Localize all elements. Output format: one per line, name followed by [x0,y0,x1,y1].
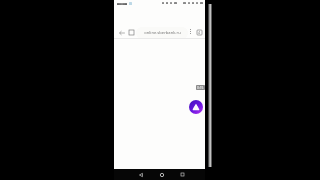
button[interactable]: Back [136,170,145,179]
staticText: online.sberbank.ru [144,30,181,36]
staticText: 4 [198,30,201,35]
button[interactable]: Back [116,27,127,38]
button[interactable]: Home [157,170,166,179]
button[interactable]: Close ad [196,85,205,90]
button[interactable]: More options [186,27,195,36]
button[interactable]: Alice voice assistant [189,100,203,114]
button[interactable]: Home [126,27,137,38]
button[interactable]: Tabs [194,27,205,38]
button[interactable]: online.sberbank.ru [136,27,188,39]
staticText: 0:15 [197,86,204,90]
button[interactable]: Recent apps [178,170,187,179]
